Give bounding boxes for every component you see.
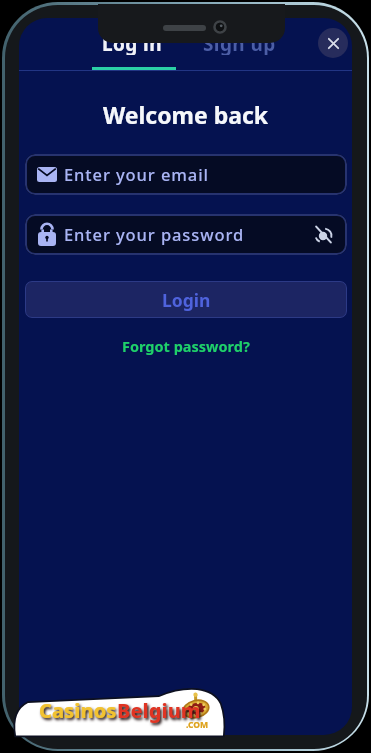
staticText: Enter your password [64, 223, 245, 245]
staticText: Log in [102, 31, 162, 55]
button[interactable]: Enter your email [25, 154, 347, 195]
button[interactable]: Forgot password? [111, 335, 261, 357]
staticText: Sign up [203, 31, 276, 55]
button[interactable]: Sign up [189, 31, 289, 55]
staticText: .COM [186, 719, 209, 731]
button[interactable] [318, 28, 348, 58]
staticText: Welcome back [19, 99, 352, 130]
button[interactable] [313, 224, 334, 245]
staticText: Belgium [117, 697, 201, 724]
staticText: Casinos [39, 697, 117, 724]
button[interactable]: Login [25, 281, 347, 318]
staticText: Forgot password? [122, 336, 250, 356]
staticText: Enter your email [64, 163, 209, 185]
button[interactable]: Log in [82, 31, 182, 55]
staticText: Login [162, 288, 211, 312]
button[interactable]: Enter your password [25, 214, 347, 255]
